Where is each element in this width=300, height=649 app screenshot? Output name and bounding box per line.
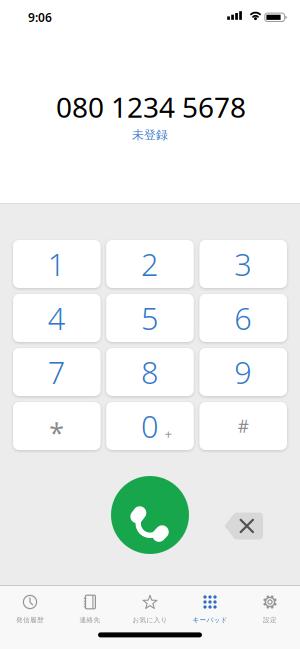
button[interactable]: 9 xyxy=(199,348,287,396)
button[interactable]: # xyxy=(199,402,287,450)
staticText: 2 xyxy=(141,244,159,284)
button[interactable]: 発信履歴 xyxy=(0,586,60,624)
button[interactable]: 0 xyxy=(106,402,194,450)
staticText: 5 xyxy=(141,298,159,338)
button[interactable]: 8 xyxy=(106,348,194,396)
button[interactable]: 2 xyxy=(106,240,194,288)
button[interactable]: 7 xyxy=(13,348,101,396)
staticText: 設定 xyxy=(263,616,277,624)
button[interactable]: 連絡先 xyxy=(60,586,120,624)
button[interactable]: 1 xyxy=(13,240,101,288)
staticText: * xyxy=(49,415,64,451)
staticText: 9 xyxy=(234,352,252,392)
button[interactable]: 発信 xyxy=(111,476,189,554)
staticText: お気に入り xyxy=(132,616,167,624)
staticText: 3 xyxy=(234,244,252,284)
button[interactable]: 設定 xyxy=(240,586,300,624)
staticText: キーパッド xyxy=(192,616,227,624)
button[interactable]: 5 xyxy=(106,294,194,342)
button[interactable]: キーパッド xyxy=(180,586,240,624)
staticText: 7 xyxy=(48,352,66,392)
button[interactable]: お気に入り xyxy=(120,586,180,624)
button[interactable]: 6 xyxy=(199,294,287,342)
staticText: + xyxy=(164,425,172,442)
staticText: # xyxy=(238,414,249,437)
button[interactable]: 4 xyxy=(13,294,101,342)
staticText: 発信履歴 xyxy=(16,616,44,624)
button[interactable]: 3 xyxy=(199,240,287,288)
staticText: 6 xyxy=(234,298,252,338)
button[interactable]: * xyxy=(13,402,101,450)
staticText: 080 1234 5678 xyxy=(56,88,246,126)
staticText: 8 xyxy=(141,352,159,392)
staticText: 0 xyxy=(141,406,159,446)
staticText: 9:06 xyxy=(28,9,52,25)
staticText: 連絡先 xyxy=(79,616,100,624)
staticText: 4 xyxy=(48,298,66,338)
button[interactable]: 削除 xyxy=(225,512,263,539)
staticText: 1 xyxy=(48,244,66,284)
staticText: 未登録 xyxy=(132,128,168,142)
